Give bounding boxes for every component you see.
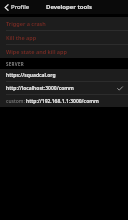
staticText: custom: http://192.168.1.1:3000/comm <box>6 98 123 105</box>
staticText: SERVER <box>6 61 24 67</box>
staticText: Trigger a crash <box>6 20 46 27</box>
staticText: http://localhost:3000/comm <box>6 85 117 92</box>
button[interactable]: https://squadcal.org <box>0 69 128 81</box>
button[interactable]: Profile <box>3 2 31 12</box>
staticText: Kill the app <box>6 34 37 41</box>
button[interactable]: Trigger a crash <box>0 17 128 30</box>
button[interactable]: custom: http://192.168.1.1:3000/comm <box>0 95 128 107</box>
other: Selected <box>117 86 123 91</box>
staticText: Profile <box>11 3 30 11</box>
staticText: https://squadcal.org <box>6 72 123 79</box>
button[interactable]: Wipe state and kill app <box>0 45 128 58</box>
staticText: Wipe state and kill app <box>6 48 67 55</box>
button[interactable]: Kill the app <box>0 31 128 44</box>
button[interactable]: http://localhost:3000/comm <box>0 82 128 94</box>
staticText: Developer tools <box>46 3 92 11</box>
